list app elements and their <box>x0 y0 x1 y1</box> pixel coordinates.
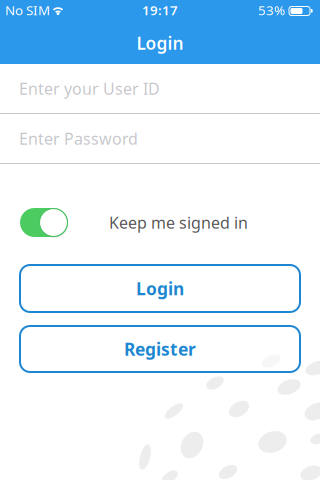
button[interactable]: Enter your User ID <box>0 64 320 113</box>
staticText: Register <box>124 337 196 360</box>
staticText: No SIM <box>5 1 50 19</box>
button[interactable]: Login <box>20 265 300 312</box>
staticText: Login <box>136 31 183 54</box>
button[interactable]: Enter Password <box>0 114 320 163</box>
staticText: Keep me signed in <box>109 212 248 233</box>
button[interactable]: Keep me signed in <box>20 208 68 237</box>
staticText: 19:17 <box>142 1 178 19</box>
staticText: 53% <box>258 1 285 19</box>
staticText: Login <box>136 277 184 300</box>
staticText: Enter Password <box>19 128 138 149</box>
button[interactable]: Register <box>20 326 300 372</box>
staticText: Enter your User ID <box>19 78 160 99</box>
